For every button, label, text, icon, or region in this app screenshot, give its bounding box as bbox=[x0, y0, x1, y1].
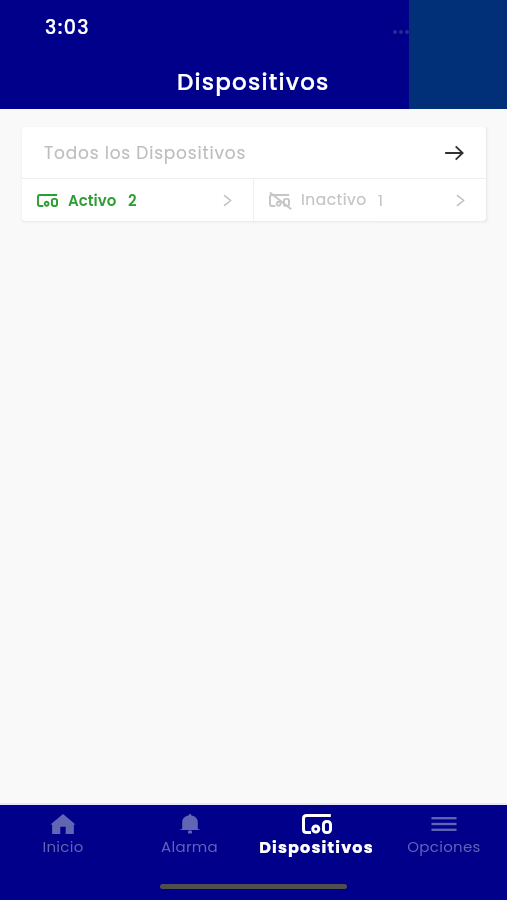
button[interactable]: Inactivo bbox=[254, 179, 486, 221]
staticText: Inactivo bbox=[301, 189, 367, 211]
staticText: Inicio bbox=[42, 836, 84, 857]
staticText: Opciones bbox=[407, 836, 481, 857]
button[interactable]: More options bbox=[393, 30, 409, 34]
staticText: Alarma bbox=[161, 836, 218, 857]
button[interactable]: Activo bbox=[22, 179, 253, 221]
staticText: 2 bbox=[128, 190, 137, 211]
staticText: 1 bbox=[378, 190, 383, 211]
button[interactable]: Opciones bbox=[380, 805, 507, 862]
staticText: 3:03 bbox=[45, 14, 91, 41]
staticText: Activo bbox=[68, 190, 117, 211]
button[interactable]: Alarma bbox=[126, 805, 253, 862]
staticText: Todos los Dispositivos bbox=[44, 141, 442, 165]
staticText: Dispositivos bbox=[177, 66, 330, 98]
button[interactable]: Todos los Dispositivos bbox=[22, 127, 486, 178]
staticText: Dispositivos bbox=[259, 836, 374, 858]
button[interactable]: Dispositivos bbox=[253, 805, 380, 862]
button[interactable]: Inicio bbox=[0, 805, 126, 862]
